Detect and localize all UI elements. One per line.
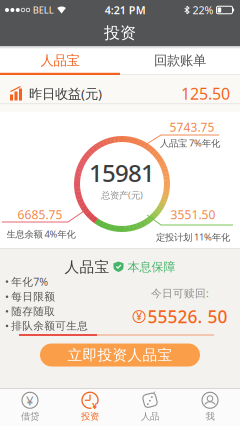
button[interactable]: ¥ xyxy=(0,388,60,426)
staticText: 6685.75 xyxy=(17,206,62,222)
staticText: 3551.50 xyxy=(170,206,215,222)
staticText: 人品宝 7%年化 xyxy=(160,137,220,149)
staticText: 我 xyxy=(205,411,214,422)
staticText: 人品宝 xyxy=(40,52,79,69)
staticText: 借贷 xyxy=(21,411,39,422)
staticText: 55526. 50 xyxy=(147,305,227,328)
staticText: 125.50 xyxy=(181,83,230,104)
staticText: 总资产(元) xyxy=(101,189,143,201)
staticText: 4:21 PM xyxy=(105,3,146,17)
staticText: 22% xyxy=(192,3,213,17)
staticText: 回款账单 xyxy=(154,52,206,69)
staticText: 人品 xyxy=(141,411,159,422)
staticText: 排队余额可生息 xyxy=(11,319,88,332)
staticText: 15981 xyxy=(89,157,155,189)
staticText: 每日限额 xyxy=(11,290,55,303)
staticText: 年化7% xyxy=(11,274,48,289)
staticText: ¥ xyxy=(26,391,34,409)
button[interactable]: 人品 xyxy=(120,388,180,426)
staticText: 生息余额 4%年化 xyxy=(6,228,75,240)
staticText: 投资 xyxy=(81,411,99,422)
staticText: 投资 xyxy=(104,23,136,43)
staticText: 人品宝 xyxy=(64,258,109,276)
staticText: 本息保障 xyxy=(127,260,175,274)
button[interactable]: ¥ xyxy=(60,388,120,426)
staticText: 昨日收益(元) xyxy=(29,85,102,102)
button[interactable]: 回款账单 xyxy=(120,46,240,75)
button[interactable]: 人品宝 xyxy=(0,46,120,75)
staticText: 5743.75 xyxy=(169,119,214,135)
staticText: ¥ xyxy=(92,399,97,412)
button[interactable]: 我 xyxy=(180,388,240,426)
staticText: 立即投资人品宝 xyxy=(67,346,172,364)
staticText: 今日可赎回: xyxy=(151,286,209,300)
button[interactable]: 立即投资人品宝 xyxy=(40,343,200,366)
staticText: 定投计划 11%年化 xyxy=(156,231,230,243)
staticText: 随存随取 xyxy=(11,305,55,318)
staticText: BELL xyxy=(33,4,54,16)
staticText: ¥ xyxy=(136,309,142,323)
